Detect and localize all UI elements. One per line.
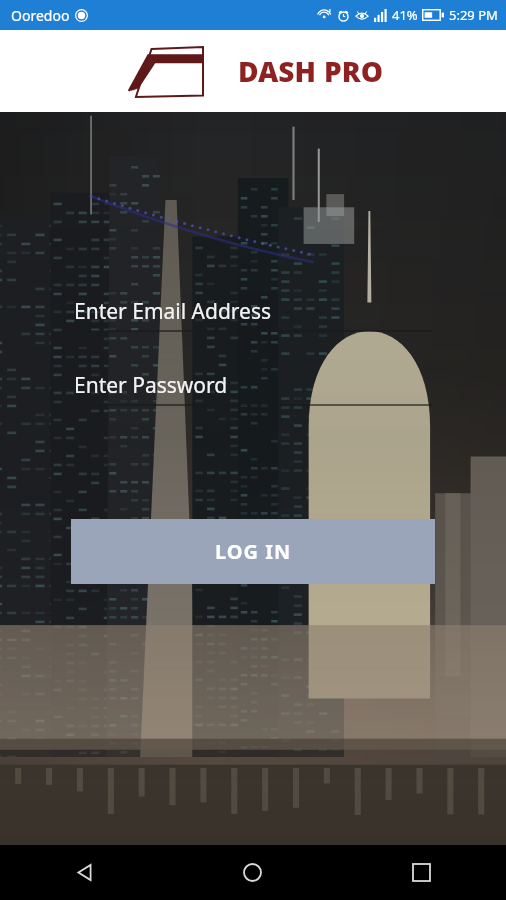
- staticText: Ooredoo: [11, 6, 70, 25]
- button[interactable]: LOG IN: [71, 519, 435, 584]
- staticText: Enter Email Address: [74, 297, 272, 326]
- staticText: PRO: [324, 52, 383, 90]
- button[interactable]: Enter Email Address: [74, 292, 432, 330]
- staticText: LOG IN: [215, 538, 292, 565]
- staticText: 41%: [392, 6, 418, 24]
- button[interactable]: Back: [0, 845, 168, 900]
- staticText: 5:29 PM: [449, 6, 498, 24]
- button[interactable]: Recent apps: [337, 845, 506, 900]
- staticText: Enter Password: [74, 371, 228, 400]
- staticText: DASH: [238, 52, 316, 90]
- button[interactable]: Enter Password: [74, 366, 432, 404]
- button[interactable]: Home: [168, 845, 337, 900]
